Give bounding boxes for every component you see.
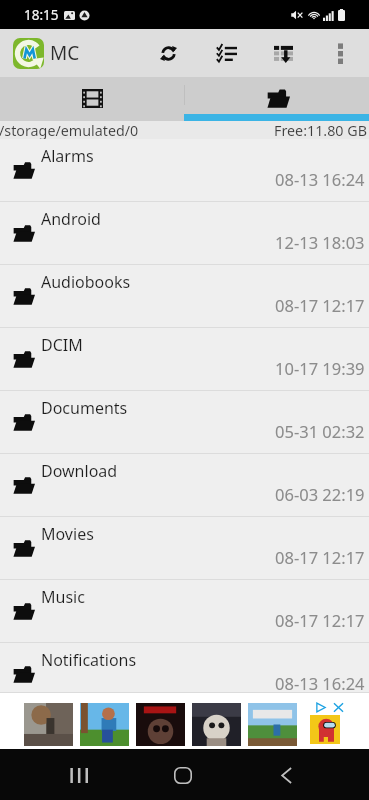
staticText: 18:15 bbox=[24, 6, 59, 24]
staticText: Download bbox=[41, 460, 118, 482]
button[interactable]: Media tab bbox=[0, 77, 184, 121]
button[interactable]: DCIM bbox=[0, 328, 369, 391]
staticText: 12-13 18:03 bbox=[275, 231, 365, 253]
staticText: Music bbox=[41, 586, 85, 608]
button[interactable]: Advertisement bbox=[80, 703, 129, 746]
button[interactable]: Audiobooks bbox=[0, 265, 369, 328]
staticText: 05-31 02:32 bbox=[275, 420, 365, 442]
staticText: 08-13 16:24 bbox=[275, 168, 365, 190]
button[interactable]: Select items bbox=[203, 30, 249, 76]
button[interactable]: Alarms bbox=[0, 139, 369, 202]
button[interactable]: Documents bbox=[0, 391, 369, 454]
staticText: Movies bbox=[41, 523, 94, 545]
staticText: Android bbox=[41, 208, 101, 230]
button[interactable]: Advertisement bbox=[248, 703, 297, 746]
staticText: Alarms bbox=[41, 145, 94, 167]
staticText: 08-17 12:17 bbox=[275, 546, 365, 568]
staticText: 08-17 12:17 bbox=[275, 609, 365, 631]
button[interactable]: Notifications bbox=[0, 643, 369, 693]
staticText: 08-17 12:17 bbox=[275, 294, 365, 316]
staticText: Free:11.80 GB bbox=[274, 121, 367, 139]
staticText: MC bbox=[50, 40, 80, 66]
button[interactable]: App logo bbox=[13, 38, 44, 69]
button[interactable]: Movies bbox=[0, 517, 369, 580]
staticText: 10-17 19:39 bbox=[275, 357, 365, 379]
button[interactable]: More options bbox=[321, 34, 359, 72]
staticText: Audiobooks bbox=[41, 271, 131, 293]
staticText: 08-13 16:24 bbox=[275, 672, 365, 694]
button[interactable]: Android bbox=[0, 202, 369, 265]
button[interactable]: Advertisement bbox=[310, 715, 340, 744]
button[interactable]: Advertisement bbox=[136, 703, 185, 746]
button[interactable]: Download bbox=[0, 454, 369, 517]
staticText: Documents bbox=[41, 397, 128, 419]
staticText: /storage/emulated/0 bbox=[0, 121, 139, 139]
button[interactable]: Music bbox=[0, 580, 369, 643]
button[interactable]: Home bbox=[159, 749, 207, 800]
button[interactable]: Back bbox=[262, 749, 310, 800]
staticText: DCIM bbox=[41, 334, 83, 356]
button[interactable]: Advertisement bbox=[24, 703, 73, 746]
button[interactable]: Sort bbox=[260, 30, 306, 76]
button[interactable]: Refresh bbox=[145, 30, 191, 76]
staticText: Notifications bbox=[41, 649, 137, 671]
button[interactable]: Files tab bbox=[184, 77, 369, 121]
button[interactable]: Recents bbox=[55, 749, 103, 800]
button[interactable]: Advertisement bbox=[192, 703, 241, 746]
staticText: 06-03 22:19 bbox=[275, 483, 365, 505]
